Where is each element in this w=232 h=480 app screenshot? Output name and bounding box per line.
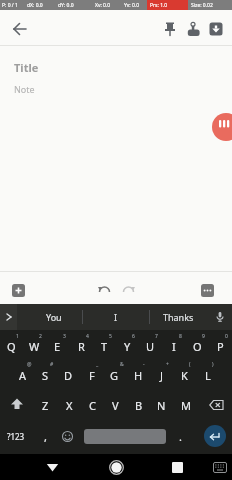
button[interactable]: R (70, 332, 93, 360)
staticText: @ (27, 361, 32, 368)
button[interactable] (38, 454, 66, 480)
staticText: 4 (86, 333, 89, 340)
staticText: Q (7, 339, 16, 354)
staticText: dY: 0.0 (58, 2, 74, 9)
button[interactable] (163, 454, 191, 480)
button[interactable]: I (162, 332, 185, 360)
button[interactable]: B (127, 390, 150, 420)
button[interactable]: K (173, 360, 196, 390)
button[interactable]: Z (34, 390, 57, 420)
staticText: Prs: 1.0 (150, 2, 168, 9)
button[interactable]: C (81, 390, 104, 420)
button[interactable]: L (196, 360, 219, 390)
button[interactable] (208, 454, 232, 480)
staticText: G (110, 368, 119, 383)
button[interactable] (204, 425, 226, 447)
staticText: Size: 0.02 (191, 2, 213, 9)
staticText: Z (42, 398, 49, 413)
staticText: ( (189, 361, 191, 368)
button[interactable]: U (139, 332, 162, 360)
button[interactable] (94, 280, 114, 300)
button[interactable] (197, 280, 217, 300)
button[interactable] (8, 280, 28, 300)
button[interactable]: Q (0, 332, 23, 360)
staticText: V (112, 398, 119, 413)
button[interactable] (56, 422, 78, 450)
staticText: . (179, 429, 182, 444)
staticText: Yv: 0.0 (124, 2, 140, 9)
staticText: I (114, 311, 118, 323)
staticText: K (181, 368, 188, 383)
button[interactable] (4, 390, 30, 420)
button[interactable]: N (150, 390, 173, 420)
staticText: 3 (63, 333, 66, 340)
button[interactable]: You (20, 304, 88, 330)
button[interactable]: I (82, 304, 149, 330)
button[interactable]: M (174, 390, 197, 420)
button[interactable] (102, 454, 130, 480)
staticText: 6 (132, 333, 135, 340)
staticText: , (44, 429, 47, 444)
staticText: 2 (39, 333, 42, 340)
staticText: Title (14, 60, 39, 75)
staticText: Xv: 0.0 (95, 2, 111, 9)
staticText: X (66, 398, 73, 413)
button[interactable]: ?123 (2, 422, 30, 450)
button[interactable] (159, 18, 181, 40)
staticText: Note (14, 83, 35, 95)
button[interactable] (202, 390, 230, 420)
button[interactable]: S (34, 360, 57, 390)
staticText: I (172, 339, 176, 354)
button[interactable]: J (150, 360, 173, 390)
button[interactable]: X (58, 390, 81, 420)
button[interactable]: 00:07 (212, 113, 232, 141)
staticText: S (42, 368, 49, 383)
staticText: F (89, 368, 95, 383)
button[interactable]: O (186, 332, 209, 360)
staticText: Thanks (163, 311, 194, 323)
staticText: - (143, 361, 145, 368)
button[interactable]: A (11, 360, 34, 390)
staticText: 7 (155, 333, 158, 340)
staticText: P: 0 / 1 (2, 2, 18, 9)
staticText: 00:07 (227, 140, 232, 141)
staticText: U (146, 339, 155, 354)
button[interactable]: F (80, 360, 103, 390)
button[interactable]: , (36, 422, 54, 450)
button[interactable] (118, 280, 138, 300)
staticText: H (134, 368, 143, 383)
button[interactable] (84, 429, 166, 444)
button[interactable] (205, 18, 227, 40)
button[interactable]: G (103, 360, 126, 390)
button[interactable] (8, 17, 32, 41)
staticText: C (89, 398, 96, 413)
button[interactable]: H (127, 360, 150, 390)
button[interactable]: T (93, 332, 116, 360)
button[interactable]: . (172, 422, 188, 450)
staticText: 0 (225, 333, 228, 340)
button[interactable] (0, 304, 17, 330)
button[interactable]: Y (116, 332, 139, 360)
button[interactable] (182, 18, 204, 40)
staticText: _ (96, 361, 99, 368)
button[interactable]: W (23, 332, 46, 360)
staticText: 5 (109, 333, 112, 340)
button[interactable]: D (57, 360, 80, 390)
button[interactable]: P (209, 332, 232, 360)
staticText: ?123 (7, 431, 25, 442)
staticText: T (101, 339, 108, 354)
button[interactable]: V (104, 390, 127, 420)
button[interactable] (208, 304, 232, 330)
staticText: 8 (179, 333, 182, 340)
button[interactable]: E (46, 332, 69, 360)
staticText: & (120, 361, 124, 368)
staticText: D (64, 368, 73, 383)
button[interactable]: Thanks (149, 304, 208, 330)
staticText: dX: 0.0 (27, 2, 43, 9)
staticText: 9 (202, 333, 205, 340)
staticText: ) (212, 361, 214, 368)
staticText: 1 (16, 333, 19, 340)
staticText: W (29, 339, 40, 354)
staticText: E (54, 339, 61, 354)
staticText: + (166, 361, 169, 368)
